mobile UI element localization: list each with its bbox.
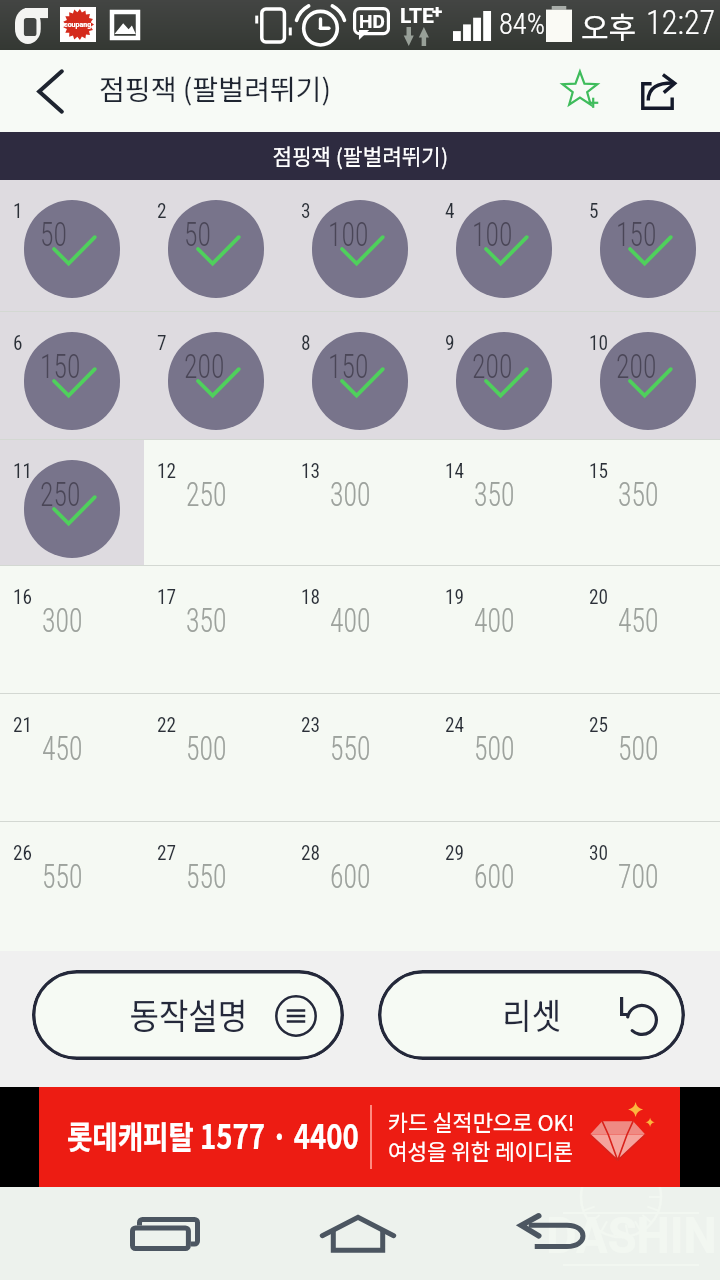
- button[interactable]: 28: [288, 822, 432, 951]
- button[interactable]: 18: [288, 566, 432, 694]
- staticText: 카드 실적만으로 OK!: [388, 1105, 575, 1137]
- staticText: 150: [328, 347, 369, 386]
- button[interactable]: 8: [288, 312, 432, 440]
- staticText: 25: [589, 713, 608, 738]
- staticText: 9: [445, 331, 455, 356]
- staticText: 20: [589, 585, 608, 610]
- staticText: 200: [472, 347, 513, 386]
- button[interactable]: 13: [288, 440, 432, 566]
- staticText: 600: [474, 857, 515, 896]
- button[interactable]: 2: [144, 180, 288, 312]
- staticText: 4: [445, 199, 455, 224]
- staticText: 350: [618, 475, 659, 514]
- button[interactable]: 리셋: [378, 970, 685, 1060]
- staticText: 17: [157, 585, 176, 610]
- staticText: 리셋: [502, 988, 562, 1039]
- staticText: 50: [184, 215, 212, 254]
- staticText: 300: [330, 475, 371, 514]
- button[interactable]: 3: [288, 180, 432, 312]
- staticText: 7: [157, 331, 167, 356]
- staticText: 6: [13, 331, 23, 356]
- staticText: 30: [589, 841, 608, 866]
- button[interactable]: 22: [144, 694, 288, 822]
- staticText: 550: [42, 857, 83, 896]
- button[interactable]: 롯데캐피탈 1577 · 4400: [39, 1087, 680, 1187]
- staticText: 50: [40, 215, 68, 254]
- staticText: 150: [616, 215, 657, 254]
- staticText: coupang: [64, 21, 92, 29]
- staticText: 3: [301, 199, 311, 224]
- button[interactable]: 21: [0, 694, 144, 822]
- button[interactable]: 10: [576, 312, 720, 440]
- button[interactable]: 19: [432, 566, 576, 694]
- button[interactable]: 23: [288, 694, 432, 822]
- staticText: 26: [13, 841, 32, 866]
- staticText: 250: [40, 475, 81, 514]
- staticText: 점핑잭 (팔벌려뛰기): [99, 67, 332, 108]
- staticText: 11: [13, 459, 32, 484]
- staticText: 19: [445, 585, 464, 610]
- staticText: 여성을 위한 레이디론: [388, 1134, 573, 1166]
- staticText: +: [432, 0, 443, 22]
- staticText: 12: [157, 459, 176, 484]
- button[interactable]: 6: [0, 312, 144, 440]
- staticText: 400: [474, 601, 515, 640]
- button[interactable]: 17: [144, 566, 288, 694]
- staticText: 600: [330, 857, 371, 896]
- staticText: 21: [13, 713, 32, 738]
- staticText: 롯데캐피탈 1577 · 4400: [67, 1112, 359, 1159]
- button[interactable]: Add to favorites: [541, 50, 621, 132]
- button[interactable]: 27: [144, 822, 288, 951]
- staticText: 12:27: [646, 2, 715, 42]
- button[interactable]: 9: [432, 312, 576, 440]
- staticText: 27: [157, 841, 176, 866]
- staticText: 1: [13, 199, 23, 224]
- button[interactable]: 4: [432, 180, 576, 312]
- staticText: 100: [328, 215, 369, 254]
- button[interactable]: 5: [576, 180, 720, 312]
- button[interactable]: 7: [144, 312, 288, 440]
- staticText: 84%: [499, 6, 545, 41]
- button[interactable]: 동작설명: [32, 970, 344, 1060]
- button[interactable]: 16: [0, 566, 144, 694]
- button[interactable]: 29: [432, 822, 576, 951]
- staticText: 200: [184, 347, 225, 386]
- staticText: 28: [301, 841, 320, 866]
- staticText: LTE: [400, 4, 434, 29]
- button[interactable]: Recents: [95, 1187, 235, 1280]
- staticText: 5: [589, 199, 599, 224]
- button[interactable]: 14: [432, 440, 576, 566]
- button[interactable]: 26: [0, 822, 144, 951]
- staticText: 15: [589, 459, 608, 484]
- staticText: 16: [13, 585, 32, 610]
- staticText: 400: [330, 601, 371, 640]
- button[interactable]: 25: [576, 694, 720, 822]
- staticText: 550: [186, 857, 227, 896]
- button[interactable]: 24: [432, 694, 576, 822]
- staticText: 250: [186, 475, 227, 514]
- staticText: 150: [40, 347, 81, 386]
- button[interactable]: 30: [576, 822, 720, 951]
- button[interactable]: 11: [0, 440, 144, 566]
- button[interactable]: Back: [483, 1187, 623, 1280]
- staticText: 300: [42, 601, 83, 640]
- staticText: DASHIN: [546, 1207, 717, 1266]
- staticText: 450: [42, 729, 83, 768]
- staticText: 10: [589, 331, 608, 356]
- button[interactable]: Back: [0, 50, 100, 132]
- button[interactable]: 20: [576, 566, 720, 694]
- button[interactable]: 1: [0, 180, 144, 312]
- staticText: 100: [472, 215, 513, 254]
- staticText: 2: [157, 199, 167, 224]
- button[interactable]: 15: [576, 440, 720, 566]
- staticText: 350: [474, 475, 515, 514]
- button[interactable]: Home: [288, 1187, 428, 1280]
- button[interactable]: Share: [620, 50, 700, 132]
- staticText: 350: [186, 601, 227, 640]
- button[interactable]: 12: [144, 440, 288, 566]
- staticText: 450: [618, 601, 659, 640]
- staticText: 오후: [581, 4, 637, 47]
- staticText: 500: [186, 729, 227, 768]
- staticText: 22: [157, 713, 176, 738]
- staticText: 14: [445, 459, 464, 484]
